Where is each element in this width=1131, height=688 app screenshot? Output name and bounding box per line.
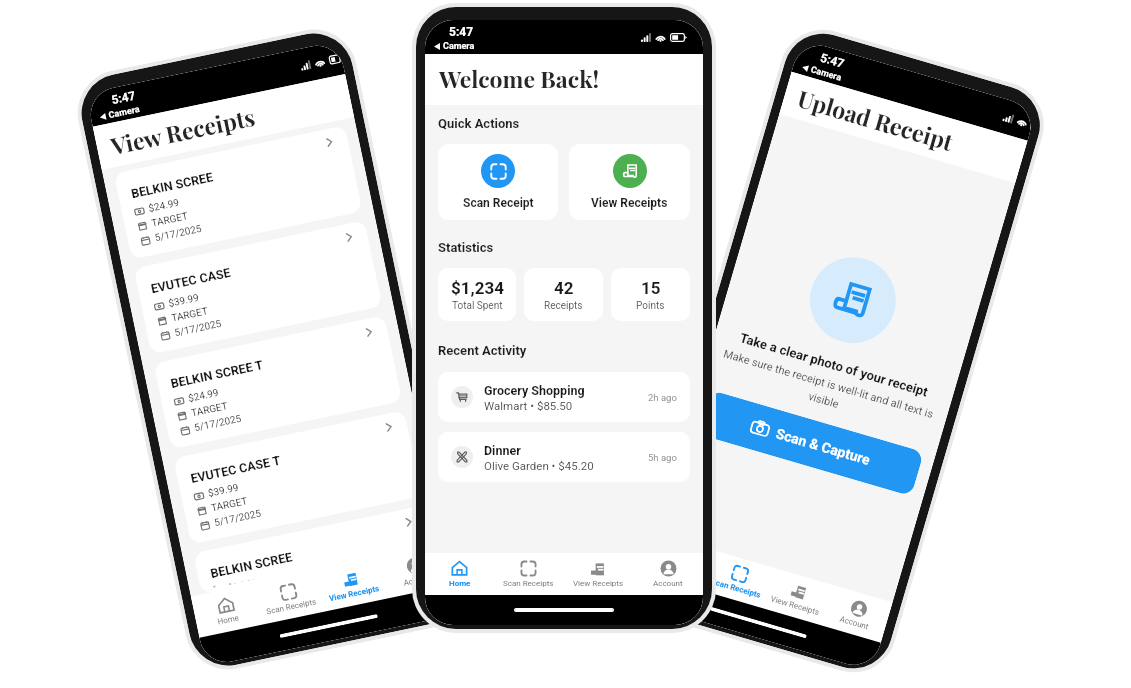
button[interactable]: Scan Receipts (703, 550, 774, 608)
button[interactable]: BELKIN SCREE (114, 125, 363, 260)
staticText: Camera (108, 104, 141, 121)
staticText: Recent Activity (438, 343, 527, 358)
button[interactable]: Home (645, 533, 715, 591)
staticText: 5:47 (819, 51, 847, 71)
button[interactable]: View Receipts (762, 568, 833, 625)
button[interactable]: Scan Receipts (494, 553, 563, 595)
button[interactable]: Scan Receipts (253, 570, 325, 625)
button[interactable]: Dinner (438, 432, 690, 482)
staticText: Statistics (438, 240, 494, 255)
staticText: TARGET (190, 400, 229, 419)
staticText: $24.99 (227, 577, 258, 585)
button[interactable]: View Receipts (316, 557, 388, 611)
button[interactable]: Account (633, 553, 703, 595)
staticText: Camera (809, 64, 843, 84)
staticText: Grocery Shopping (484, 383, 585, 398)
staticText: Take a clear photo of your receipt (738, 330, 930, 400)
staticText: BELKIN SCREE T (169, 357, 264, 391)
staticText: 2h ago (648, 392, 677, 403)
staticText: BELKIN SCREE (209, 549, 294, 581)
staticText: $39.99 (207, 482, 240, 500)
button[interactable]: 15 (611, 268, 690, 321)
staticText: Quick Actions (438, 116, 520, 131)
button[interactable]: EVUTEC CASE T (173, 410, 422, 544)
button[interactable]: Scan & Capture (698, 390, 924, 496)
button[interactable]: Account (821, 585, 893, 643)
staticText: 5/17/2025 (193, 413, 243, 434)
staticText: TARGET (150, 210, 189, 230)
staticText: View Receipts (328, 584, 380, 603)
staticText: Olive Garden • $45.20 (484, 459, 594, 472)
staticText: Make sure the receipt is well-lit and al… (715, 347, 937, 437)
staticText: $39.99 (167, 292, 200, 310)
staticText: 5/17/2025 (173, 318, 223, 339)
staticText: View Receipts (769, 594, 821, 617)
button[interactable]: BELKIN SCREE (193, 505, 433, 594)
button[interactable]: BELKIN SCREE T (153, 315, 402, 449)
staticText: 42 (554, 278, 574, 298)
staticText: Welcome Back! (439, 63, 600, 94)
staticText: 5/17/2025 (213, 508, 262, 529)
staticText: 5:47 (110, 88, 137, 107)
staticText: Scan & Capture (774, 425, 873, 468)
staticText: Total Spent (452, 300, 503, 312)
staticText: View Receipts (591, 196, 668, 210)
staticText: Home (217, 613, 240, 627)
staticText: Upload Receipt (794, 82, 957, 157)
staticText: View Receipts (108, 101, 258, 161)
staticText: EVUTEC CASE T (189, 452, 282, 486)
staticText: 5h ago (648, 452, 677, 463)
button[interactable]: Scan Receipt (438, 144, 558, 220)
button[interactable]: $1,234 (438, 268, 516, 321)
staticText: 5:47 (449, 25, 474, 39)
staticText: $24.99 (147, 197, 180, 215)
staticText: Dinner (484, 443, 521, 458)
button[interactable]: Home (191, 583, 262, 638)
staticText: Receipts (544, 300, 583, 312)
staticText: Points (636, 300, 665, 312)
button[interactable]: 42 (524, 268, 603, 321)
staticText: Account (839, 614, 870, 632)
button[interactable]: View Receipts (569, 144, 690, 220)
staticText: $1,234 (451, 278, 504, 298)
staticText: View Receipts (573, 579, 624, 588)
staticText: 15 (641, 278, 661, 298)
staticText: EVUTEC CASE (149, 265, 232, 296)
button[interactable]: Home (425, 553, 494, 595)
button[interactable]: EVUTEC CASE (133, 220, 382, 354)
button[interactable]: Account (380, 544, 452, 598)
button[interactable]: Grocery Shopping (438, 372, 690, 422)
staticText: Account (653, 579, 683, 588)
staticText: Home (449, 579, 471, 588)
staticText: TARGET (170, 305, 209, 324)
staticText: Scan Receipts (266, 597, 317, 616)
staticText: Scan Receipts (710, 577, 762, 600)
staticText: $24.99 (187, 387, 220, 405)
staticText: TARGET (210, 495, 249, 514)
staticText: 5/17/2025 (154, 223, 203, 244)
staticText: Home (666, 564, 689, 579)
staticText: Scan Receipts (503, 579, 554, 588)
staticText: Account (403, 573, 434, 588)
button[interactable]: View Receipts (563, 553, 633, 595)
staticText: Camera (443, 41, 475, 52)
staticText: Walmart • $85.50 (484, 399, 573, 412)
staticText: BELKIN SCREE (130, 169, 215, 201)
staticText: Scan Receipt (463, 196, 534, 210)
